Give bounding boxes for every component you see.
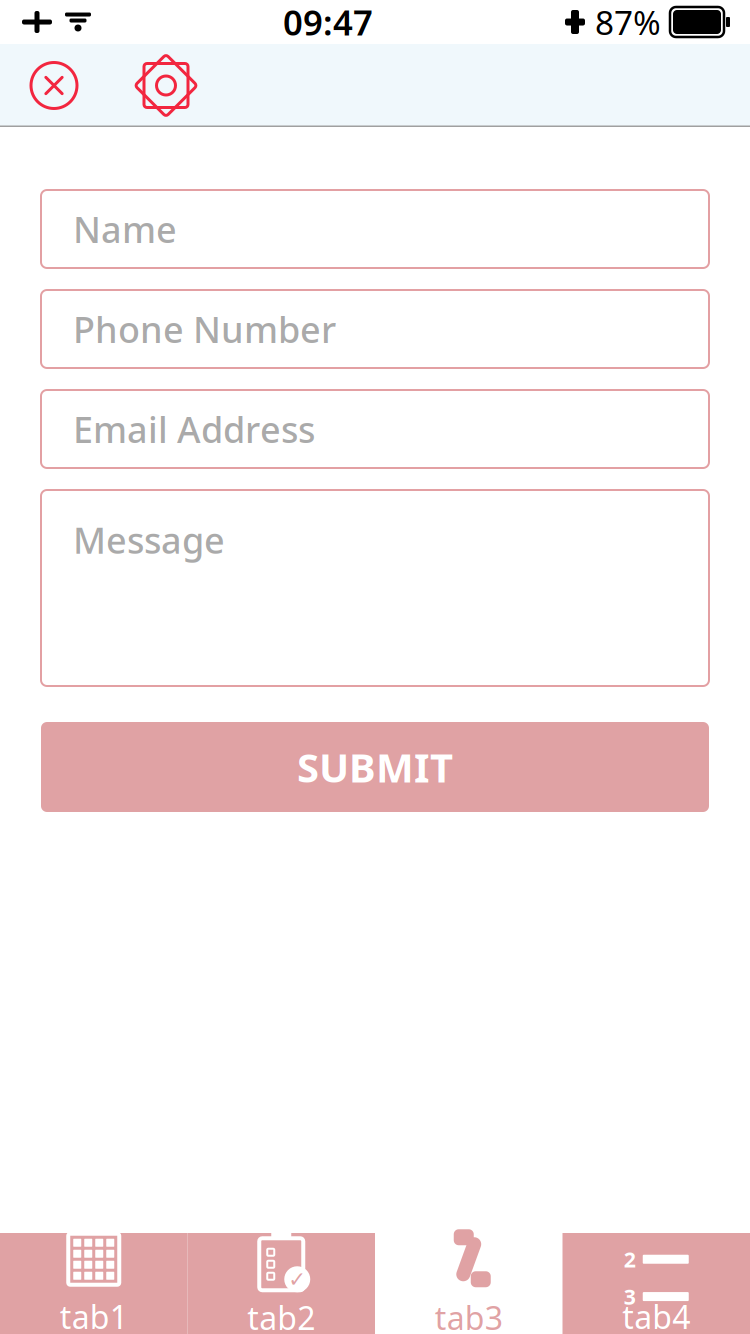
staticText: Name <box>73 205 177 253</box>
staticText: 09:47 <box>283 0 373 45</box>
button[interactable]: Message <box>41 490 709 686</box>
button[interactable]: Name <box>41 190 709 268</box>
staticText: tab4 <box>622 1295 690 1334</box>
button[interactable]: Phone Number <box>41 290 709 368</box>
staticText: 87% <box>595 0 661 44</box>
button[interactable]: ✓ <box>187 1233 375 1334</box>
staticText: Message <box>73 516 225 564</box>
staticText: 2 <box>624 1245 636 1273</box>
button[interactable]: tab1 <box>0 1233 187 1334</box>
button[interactable]: Close <box>20 51 88 119</box>
staticText: tab3 <box>435 1296 503 1334</box>
button[interactable]: Settings <box>132 51 200 119</box>
staticText: tab2 <box>247 1296 315 1334</box>
button[interactable]: tab3 <box>375 1233 562 1334</box>
button[interactable]: Email Address <box>41 390 709 468</box>
staticText: ✓ <box>288 1267 306 1291</box>
staticText: 1 <box>624 1208 636 1236</box>
staticText: Phone Number <box>73 305 336 353</box>
staticText: SUBMIT <box>297 740 453 793</box>
staticText: 3 <box>624 1282 636 1311</box>
button[interactable]: SUBMIT <box>41 722 709 812</box>
staticText: tab1 <box>60 1295 128 1334</box>
staticText: Email Address <box>73 405 315 453</box>
button[interactable]: 1 <box>562 1233 750 1334</box>
